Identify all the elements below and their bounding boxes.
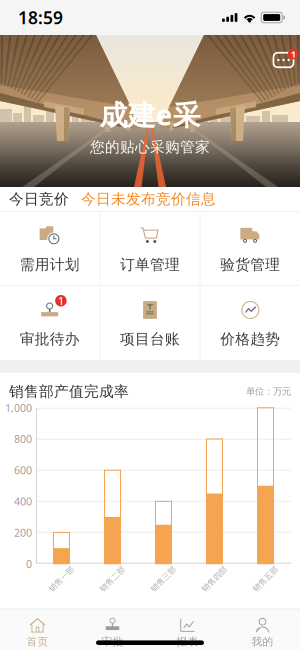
staticText: 销售一部	[45, 574, 77, 584]
staticText: 单位：万元	[246, 386, 291, 397]
staticText: 需用计划	[20, 255, 80, 273]
staticText: 1	[58, 294, 64, 308]
staticText: 200	[14, 525, 32, 540]
staticText: 成建e采	[99, 96, 200, 133]
staticText: 1	[291, 48, 296, 60]
staticText: 今日未发布竞价信息	[81, 190, 216, 208]
staticText: 首页	[26, 635, 48, 648]
staticText: 400	[14, 494, 32, 508]
staticText: 报表	[176, 635, 198, 648]
staticText: 18:59	[18, 6, 63, 29]
staticText: 审批待办	[20, 330, 80, 348]
staticText: 项目台账	[120, 330, 180, 348]
staticText: 验货管理	[220, 255, 280, 273]
button[interactable]: 验货管理	[201, 212, 300, 285]
staticText: 1,000	[5, 401, 32, 415]
staticText: 销售五部	[249, 574, 281, 584]
button[interactable]: 价格趋势	[201, 286, 300, 360]
staticText: 价格趋势	[220, 330, 280, 348]
button[interactable]: 项目台账	[100, 286, 200, 360]
button[interactable]: 需用计划	[0, 212, 99, 285]
staticText: 我的	[251, 635, 273, 648]
staticText: 销售部产值完成率	[9, 382, 129, 400]
staticText: 您的贴心采购管家	[90, 138, 210, 156]
staticText: 销售四部	[198, 574, 230, 584]
button[interactable]: 1	[0, 286, 99, 360]
button[interactable]: 报表	[150, 609, 225, 650]
button[interactable]: Messages	[272, 47, 300, 69]
staticText: 今日竞价	[9, 190, 69, 208]
staticText: 800	[14, 432, 32, 446]
staticText: 0	[26, 557, 32, 571]
button[interactable]: 订单管理	[100, 212, 200, 285]
button[interactable]: 审批	[75, 609, 150, 650]
staticText: 销售三部	[147, 574, 179, 584]
button[interactable]: 首页	[0, 609, 75, 650]
staticText: 订单管理	[120, 255, 180, 273]
button[interactable]: 今日竞价	[0, 187, 300, 211]
staticText: 销售二部	[96, 574, 128, 584]
staticText: 审批	[101, 635, 123, 648]
staticText: 600	[14, 463, 32, 477]
button[interactable]: 我的	[225, 609, 300, 650]
